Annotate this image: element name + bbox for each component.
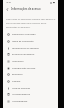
button[interactable]: Dispositivo conectado: [3, 31, 58, 38]
button[interactable]: Back: [4, 6, 10, 12]
staticText: Mapa de localização: [12, 40, 34, 43]
staticText: Economia de Bateria: [12, 53, 35, 56]
staticText: Temperatura do telefone: [12, 47, 39, 50]
button[interactable]: Mapa de localização: [3, 38, 58, 45]
button[interactable]: Armazenamento: [3, 91, 58, 98]
staticText: Dispositivo conectado: [12, 33, 36, 36]
staticText: Bluetooth: [12, 73, 23, 76]
staticText: 10:30: [6, 1, 11, 4]
staticText: Câmera: [12, 80, 21, 83]
staticText: Saiba como os aplicativos acessam seus d…: [6, 18, 56, 29]
button[interactable]: Bluetooth: [3, 71, 58, 78]
button[interactable]: Economia de Bateria: [3, 51, 58, 58]
staticText: Configuração de rede: [12, 67, 36, 70]
staticText: Aplicativos: [12, 60, 24, 63]
button[interactable]: Acessibilidade: [3, 98, 58, 105]
button[interactable]: Câmera: [3, 78, 58, 85]
staticText: Acessibilidade: [12, 100, 28, 103]
button[interactable]: Temperatura do telefone: [3, 45, 58, 52]
button[interactable]: Configuração de rede: [3, 65, 58, 72]
button[interactable]: Lista de arquivos: [3, 85, 58, 92]
staticText: Armazenamento: [12, 93, 31, 96]
staticText: Informações de acesso: [11, 7, 41, 11]
staticText: Lista de arquivos: [12, 87, 31, 90]
button[interactable]: Aplicativos: [3, 58, 58, 65]
